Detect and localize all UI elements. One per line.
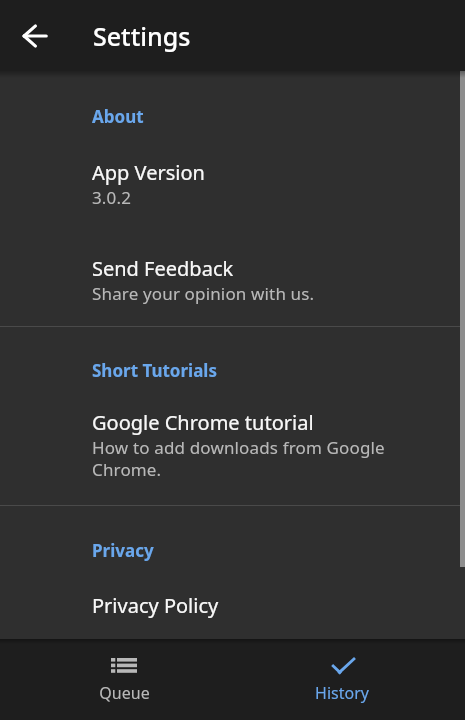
button[interactable]: Queue	[0, 639, 232, 720]
staticText: App Version	[92, 159, 205, 186]
button[interactable]: Back	[11, 12, 59, 60]
staticText: About	[92, 105, 144, 128]
button[interactable]: Google Chrome tutorial	[0, 382, 465, 481]
staticText: How to add downloads from Google Chrome.	[92, 436, 392, 481]
staticText: Privacy Policy	[92, 592, 219, 619]
staticText: Share your opinion with us.	[92, 282, 315, 305]
button[interactable]: Send Feedback	[0, 209, 465, 305]
staticText: Short Tutorials	[92, 359, 217, 382]
button[interactable]: History	[232, 639, 465, 720]
staticText: Send Feedback	[92, 255, 234, 282]
button[interactable]: App Version	[0, 128, 465, 209]
staticText: 3.0.2	[92, 186, 132, 209]
staticText: Privacy	[92, 539, 154, 562]
staticText: Queue	[99, 682, 150, 704]
staticText: History	[315, 682, 369, 704]
staticText: Google Chrome tutorial	[92, 409, 314, 436]
button[interactable]: Privacy Policy	[0, 562, 465, 619]
staticText: Settings	[93, 19, 191, 53]
